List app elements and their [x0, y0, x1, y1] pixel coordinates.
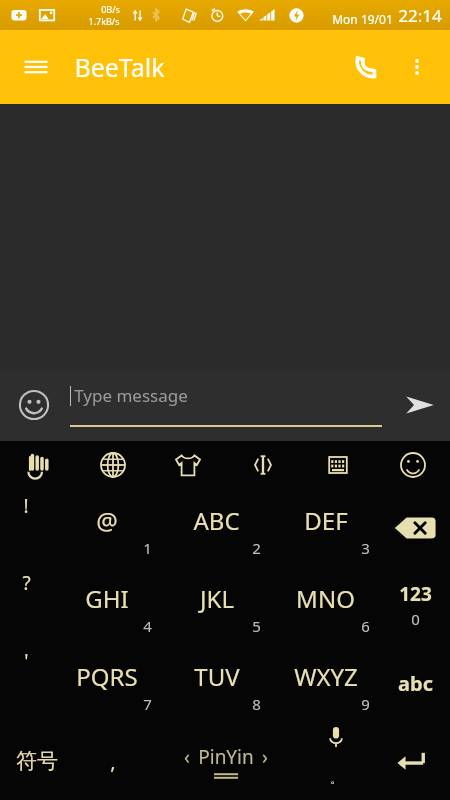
button[interactable]: ,	[74, 722, 152, 800]
staticText: WXYZ	[294, 660, 358, 693]
button[interactable]: ?	[0, 566, 52, 644]
button[interactable]: Emoticon	[375, 441, 450, 489]
staticText: DEF	[304, 504, 348, 537]
staticText: PinYin	[198, 744, 254, 770]
staticText: ,	[110, 748, 116, 775]
staticText: 6	[361, 616, 370, 636]
button[interactable]: !	[0, 489, 52, 566]
staticText: TUV	[194, 660, 240, 693]
staticText: 7	[143, 694, 152, 714]
button[interactable]: @	[52, 489, 162, 566]
staticText: 0B/s	[101, 3, 120, 15]
button[interactable]: Emoji	[8, 379, 60, 431]
staticText: 4	[143, 616, 152, 636]
staticText: 123	[399, 581, 432, 607]
staticText: Type message	[74, 384, 188, 407]
staticText: BeeTalk	[74, 50, 165, 84]
button[interactable]: ABC	[162, 489, 271, 566]
staticText: 2	[252, 538, 261, 558]
staticText: ?	[22, 570, 31, 596]
staticText: GHI	[85, 582, 129, 615]
staticText: 3	[361, 538, 370, 558]
button[interactable]: Type message	[70, 384, 382, 427]
button[interactable]: ‹	[152, 722, 300, 800]
staticText: 。	[330, 770, 343, 786]
staticText: 8	[252, 694, 261, 714]
button[interactable]: Theme	[150, 441, 225, 489]
staticText: '	[24, 648, 29, 674]
button[interactable]: PQRS	[52, 644, 162, 722]
button[interactable]: MNO	[271, 566, 380, 644]
button[interactable]: Keyboard layout	[300, 441, 375, 489]
button[interactable]: Call	[342, 44, 388, 90]
button[interactable]: TUV	[162, 644, 271, 722]
button[interactable]: 符号	[0, 722, 74, 800]
button[interactable]: Send	[396, 381, 444, 429]
button[interactable]: Backspace	[380, 489, 450, 566]
staticText: 0	[411, 609, 420, 629]
staticText: Mon 19/01	[332, 11, 393, 27]
staticText: ›	[262, 744, 268, 770]
button[interactable]: Voice input	[300, 722, 372, 800]
staticText: abc	[398, 670, 433, 697]
button[interactable]: Language	[75, 441, 150, 489]
staticText: 9	[361, 694, 370, 714]
button[interactable]: JKL	[162, 566, 271, 644]
button[interactable]: '	[0, 644, 52, 722]
button[interactable]: 123	[380, 566, 450, 644]
button[interactable]: DEF	[271, 489, 380, 566]
staticText: !	[23, 493, 29, 519]
staticText: 符号	[16, 748, 58, 774]
staticText: 1.7kB/s	[88, 15, 120, 27]
button[interactable]: More options	[396, 46, 438, 88]
staticText: PQRS	[76, 660, 138, 693]
staticText: 1	[143, 538, 152, 558]
staticText: @	[96, 504, 118, 537]
staticText: 5	[252, 616, 261, 636]
staticText: ‹	[184, 744, 190, 770]
button[interactable]: Menu	[14, 45, 58, 89]
button[interactable]: GHI	[52, 566, 162, 644]
staticText: ABC	[193, 504, 240, 537]
staticText: JKL	[200, 582, 234, 615]
staticText: 22:14	[398, 4, 442, 27]
staticText: MNO	[296, 582, 355, 615]
button[interactable]: WXYZ	[271, 644, 380, 722]
button[interactable]: Handwriting	[0, 441, 75, 489]
button[interactable]: Cursor	[225, 441, 300, 489]
button[interactable]: Enter	[372, 722, 450, 800]
button[interactable]: abc	[380, 644, 450, 722]
